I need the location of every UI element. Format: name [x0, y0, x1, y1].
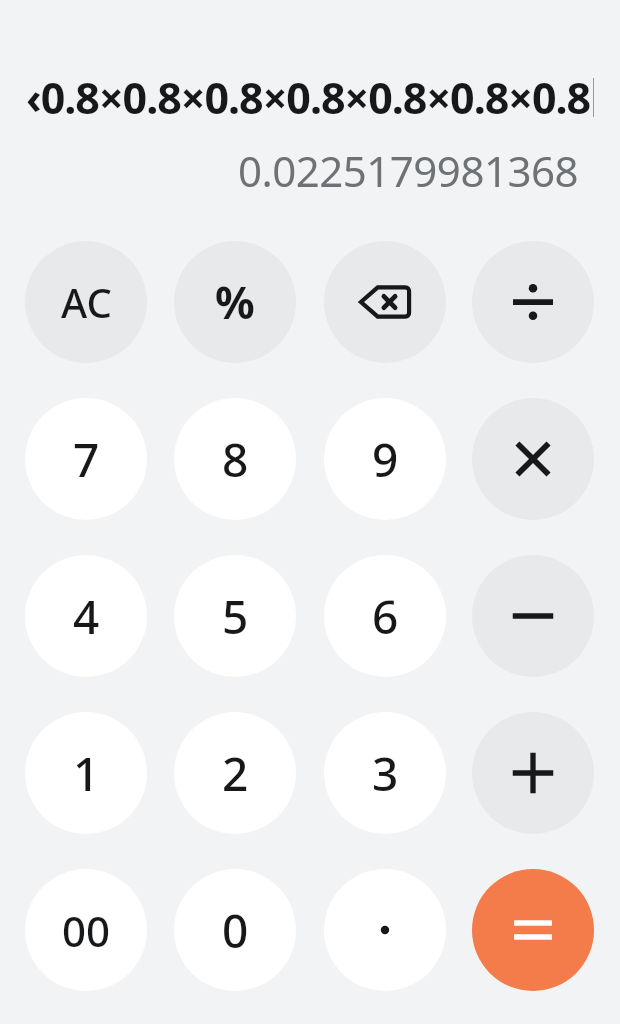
staticText: 3 — [372, 742, 399, 805]
staticText: ‹0.8×0.8×0.8×0.8×0.8×0.8×0.8 — [26, 68, 591, 127]
staticText: 0.0225179981368 — [0, 142, 578, 199]
staticText: 0 — [222, 899, 249, 962]
button[interactable]: 9 — [324, 398, 446, 520]
button[interactable]: 00 — [25, 869, 147, 991]
button[interactable]: Add — [472, 712, 594, 834]
staticText: 6 — [372, 585, 399, 648]
button[interactable]: 0 — [174, 869, 296, 991]
button[interactable]: Equals — [472, 869, 594, 991]
button[interactable]: Divide — [472, 241, 594, 363]
staticText: 8 — [222, 428, 249, 491]
button[interactable]: 1 — [25, 712, 147, 834]
button[interactable]: 5 — [174, 555, 296, 677]
staticText: % — [215, 272, 255, 332]
staticText: 5 — [222, 585, 249, 648]
staticText: 1 — [73, 742, 100, 805]
button[interactable]: Subtract — [472, 555, 594, 677]
button[interactable]: 4 — [25, 555, 147, 677]
staticText: 00 — [62, 902, 111, 959]
button[interactable]: 2 — [174, 712, 296, 834]
staticText: 4 — [73, 585, 100, 648]
button[interactable]: 8 — [174, 398, 296, 520]
staticText: 9 — [372, 428, 399, 491]
button[interactable]: 6 — [324, 555, 446, 677]
staticText: AC — [61, 275, 112, 329]
button[interactable]: % — [174, 241, 296, 363]
button[interactable]: AC — [25, 241, 147, 363]
staticText: 7 — [73, 428, 100, 491]
staticText: 2 — [222, 742, 249, 805]
button[interactable]: 3 — [324, 712, 446, 834]
button[interactable]: 7 — [25, 398, 147, 520]
button[interactable]: Multiply — [472, 398, 594, 520]
button[interactable]: Backspace — [324, 241, 446, 363]
button[interactable]: Decimal point — [324, 869, 446, 991]
